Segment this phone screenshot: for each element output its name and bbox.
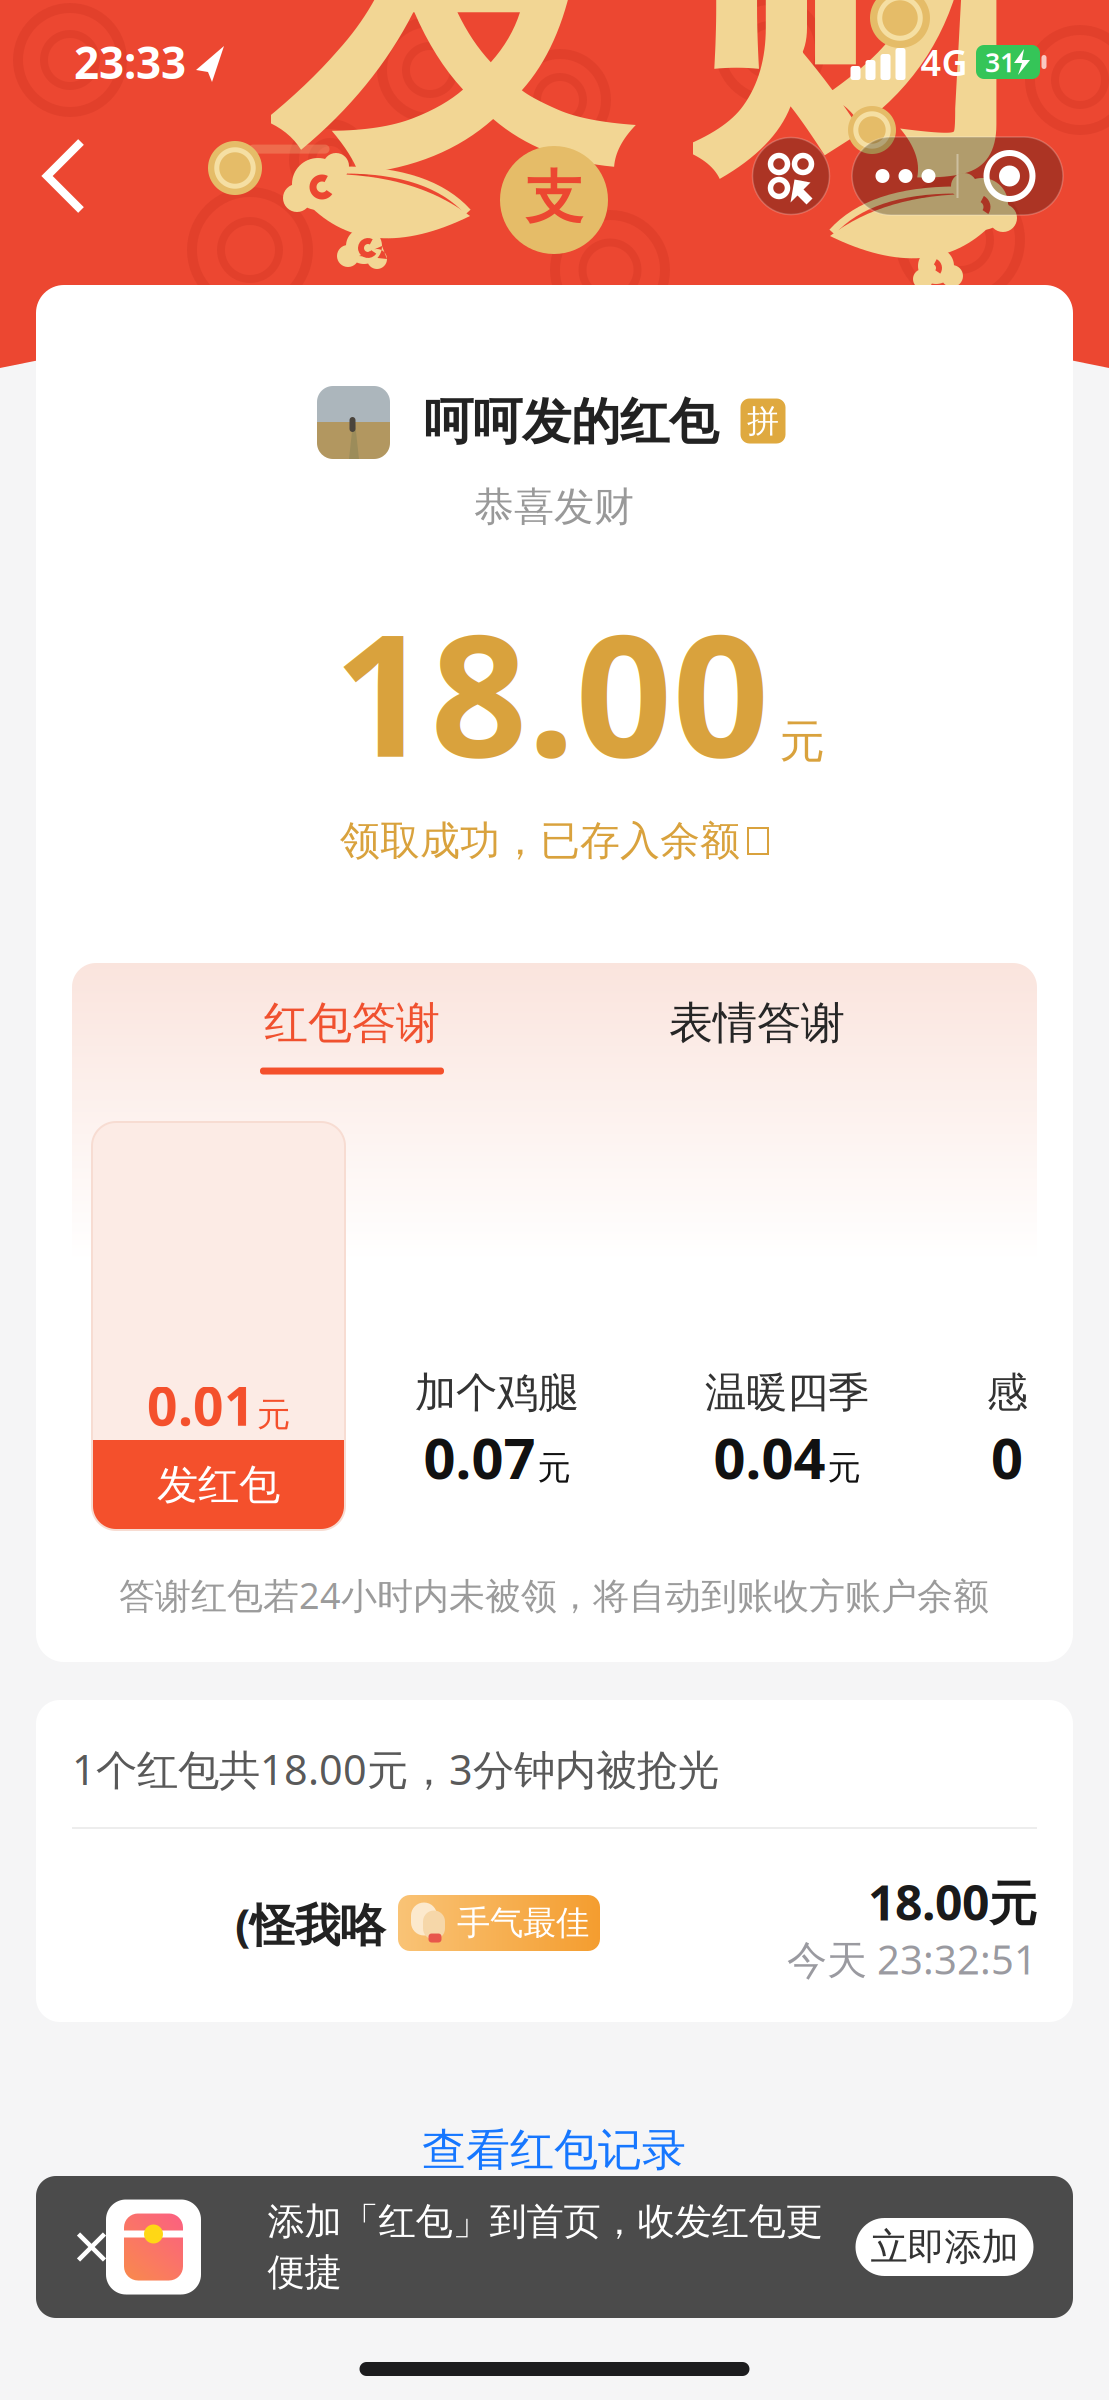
staticText: 财 (681, 0, 1049, 234)
staticText: 4G (920, 38, 967, 86)
staticText: 元 (779, 714, 824, 769)
staticText: 发红包 (157, 1460, 280, 1510)
staticText: 立即添加 (870, 2224, 1018, 2270)
staticText: 便捷 (267, 2249, 341, 2295)
button[interactable]: 感 (986, 1367, 1027, 1494)
button[interactable]: 查看红包记录 (389, 2110, 719, 2190)
staticText: 元 (257, 1394, 290, 1435)
button[interactable]: 表情答谢 (607, 973, 907, 1073)
button[interactable]: 相关小程序 (752, 137, 829, 214)
button[interactable]: 发红包 0.01元 (92, 1122, 345, 1530)
button[interactable]: 关闭提示 (70, 2226, 112, 2268)
staticText: 领取成功，已存入余额 (340, 816, 740, 865)
staticText: 查看红包记录 (422, 2123, 686, 2177)
staticText: 23:33 (74, 33, 186, 91)
staticText: 0 (991, 1420, 1023, 1495)
staticText: 加个鸡腿 (415, 1367, 579, 1418)
staticText: 18.00 (333, 579, 769, 803)
staticText: 手气最佳 (457, 1902, 589, 1943)
staticText: 红包答谢 (264, 996, 440, 1050)
staticText: 表情答谢 (669, 996, 845, 1050)
staticText: 呵呵发的红包 (424, 392, 718, 452)
button[interactable]: 加个鸡腿 (415, 1367, 579, 1494)
staticText: 0.07 (423, 1420, 535, 1495)
staticText: 元 (827, 1447, 860, 1488)
staticText: 元 (537, 1447, 570, 1488)
button[interactable]: 红包答谢 (202, 973, 502, 1073)
staticText: 支 (525, 163, 582, 233)
staticText: 0.04 (713, 1420, 825, 1495)
staticText: 1个红包共18.00元，3分钟内被抢光 (72, 1742, 719, 1796)
staticText: 温暖四季 (705, 1367, 869, 1418)
staticText: 0.01 (147, 1370, 255, 1440)
staticText: 答谢红包若24小时内未被领，将自动到账收方账户余额 (119, 1571, 989, 1619)
staticText: 感 (986, 1367, 1027, 1418)
staticText: 今天 23:32:51 (787, 1932, 1037, 1985)
button[interactable]: 返回 (23, 130, 113, 222)
staticText: 恭喜发财 (474, 482, 634, 531)
staticText: 添加「红包」到首页，收发红包更 (267, 2199, 822, 2244)
staticText: 18.00元 (868, 1870, 1037, 1934)
button[interactable]: 更多 (855, 137, 955, 215)
staticText: 发 (268, 0, 636, 234)
staticText: 拼 (747, 401, 779, 441)
staticText: 31 (985, 44, 1015, 80)
button[interactable]: 立即添加 (855, 2218, 1033, 2276)
button[interactable]: 温暖四季 (705, 1367, 869, 1494)
button[interactable]: 关闭 (959, 137, 1059, 215)
staticText: (怪我咯 (235, 1894, 385, 1954)
